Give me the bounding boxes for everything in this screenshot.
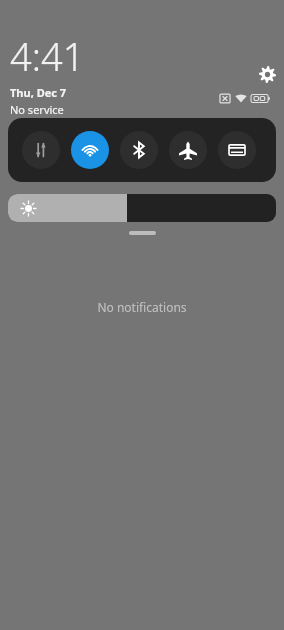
button[interactable]: Settings: [256, 63, 278, 85]
staticText: Thu, Dec 7: [10, 85, 67, 100]
button[interactable]: Bluetooth: [120, 131, 158, 169]
staticText: No notifications: [97, 299, 187, 315]
staticText: 4:41: [10, 30, 85, 82]
button[interactable]: Wi-Fi: [71, 131, 109, 169]
button[interactable]: Mobile data: [22, 131, 60, 169]
button[interactable]: [8, 194, 276, 222]
button[interactable]: Wallet: [218, 131, 256, 169]
button[interactable]: Airplane mode: [169, 131, 207, 169]
staticText: No service: [10, 102, 64, 117]
